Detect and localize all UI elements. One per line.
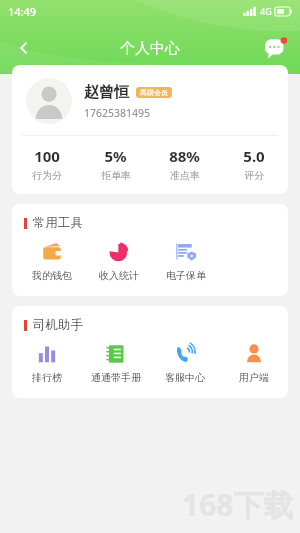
staticText: 常用工具 [33, 215, 83, 231]
staticText: 个人中心 [120, 39, 180, 58]
staticText: 赵曾恒 [84, 83, 129, 102]
staticText: 准点率 [170, 169, 200, 182]
button[interactable]: 排行榜 [12, 341, 81, 386]
staticText: 5% [104, 146, 127, 166]
staticText: 通通带手册 [91, 371, 141, 384]
button[interactable]: 我的钱包 [18, 239, 85, 284]
staticText: 100 [34, 146, 60, 166]
staticText: 14:49 [8, 4, 37, 19]
staticText: 电子保单 [166, 269, 206, 282]
staticText: 司机助手 [33, 317, 83, 333]
staticText: 5.0 [243, 146, 265, 166]
staticText: 168下载 [182, 484, 294, 525]
button[interactable]: 赵曾恒 [12, 65, 288, 194]
button[interactable]: 电子保单 [152, 239, 220, 284]
button[interactable]: 客服中心 [150, 341, 219, 386]
staticText: 4G [260, 5, 272, 17]
staticText: 拒单率 [101, 169, 131, 182]
staticText: 行为分 [32, 169, 62, 182]
staticText: 评分 [244, 169, 264, 182]
button[interactable]: 收入统计 [85, 239, 152, 284]
button[interactable]: Back [4, 28, 44, 68]
button[interactable]: 通通带手册 [81, 341, 150, 386]
staticText: 排行榜 [32, 371, 62, 384]
staticText: 我的钱包 [32, 269, 72, 282]
staticText: 88% [169, 146, 200, 166]
staticText: 高级会员 [140, 88, 168, 97]
button[interactable]: 5% [81, 146, 150, 182]
staticText: 客服中心 [165, 371, 205, 384]
staticText: 17625381495 [84, 106, 151, 120]
button[interactable]: 88% [150, 146, 219, 182]
button[interactable]: Messages [258, 30, 294, 66]
button[interactable]: 100 [12, 146, 81, 182]
button[interactable]: 用户端 [219, 341, 288, 386]
button[interactable]: 5.0 [219, 146, 288, 182]
staticText: 用户端 [239, 371, 269, 384]
staticText: 收入统计 [99, 269, 139, 282]
